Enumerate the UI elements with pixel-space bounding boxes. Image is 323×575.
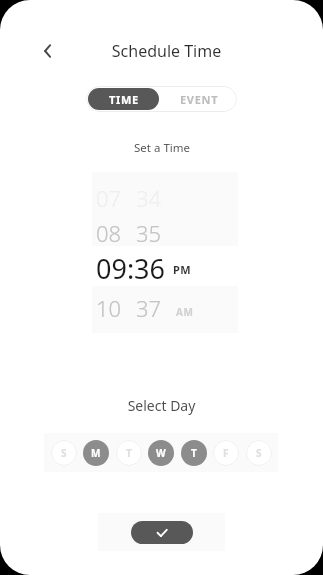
staticText: S bbox=[61, 446, 67, 460]
button[interactable]: EVENT bbox=[161, 86, 237, 112]
staticText: 07 bbox=[96, 183, 122, 213]
staticText: 35 bbox=[136, 218, 162, 248]
staticText: Schedule Time bbox=[10, 40, 323, 62]
staticText: Select Day bbox=[0, 396, 323, 415]
staticText: 08 bbox=[96, 218, 122, 248]
staticText: M bbox=[91, 446, 101, 460]
staticText: Set a Time bbox=[1, 140, 323, 156]
staticText: S bbox=[256, 446, 262, 460]
staticText: T bbox=[126, 446, 132, 460]
button[interactable]: S bbox=[51, 440, 77, 466]
staticText: 34 bbox=[136, 183, 162, 213]
staticText: EVENT bbox=[180, 92, 219, 107]
staticText: PM bbox=[173, 262, 192, 277]
staticText: 37 bbox=[136, 293, 162, 323]
button[interactable]: F bbox=[213, 440, 239, 466]
button[interactable]: Back bbox=[34, 37, 62, 65]
button[interactable]: W bbox=[148, 440, 174, 466]
button[interactable]: S bbox=[246, 440, 272, 466]
staticText: AM bbox=[176, 305, 194, 319]
button[interactable]: T bbox=[181, 440, 207, 466]
staticText: 09:36 bbox=[96, 250, 166, 282]
staticText: T bbox=[191, 446, 197, 460]
staticText: W bbox=[156, 446, 166, 460]
button[interactable]: Confirm bbox=[131, 521, 193, 544]
staticText: F bbox=[223, 446, 229, 460]
staticText: 10 bbox=[96, 293, 122, 323]
button[interactable]: M bbox=[83, 440, 109, 466]
button[interactable]: TIME bbox=[88, 88, 159, 110]
button[interactable]: T bbox=[116, 440, 142, 466]
staticText: TIME bbox=[109, 92, 139, 107]
